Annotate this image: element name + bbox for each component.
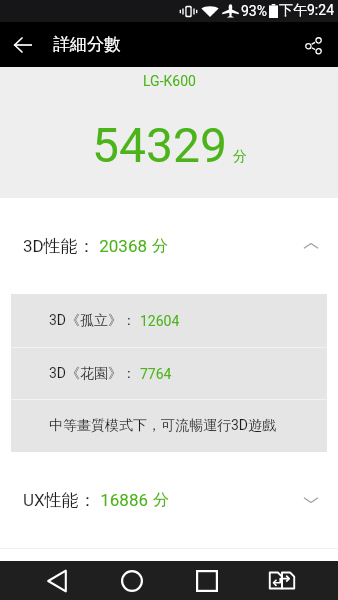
staticText: 93% — [241, 3, 267, 19]
staticText: 3D《孤立》： — [49, 312, 137, 330]
button[interactable]: Recent apps — [184, 561, 229, 600]
button[interactable]: Home — [109, 561, 154, 600]
staticText: 分 — [152, 236, 168, 256]
staticText: 3D《花園》： — [49, 365, 137, 383]
staticText: LG-K600 — [143, 73, 196, 89]
staticText: 3D性能： — [23, 236, 95, 257]
staticText: UX性能： — [23, 490, 96, 511]
button[interactable]: Back — [6, 28, 40, 62]
button[interactable]: 3D《孤立》： — [11, 294, 327, 347]
staticText: 12604 — [140, 313, 180, 329]
staticText: 分 — [233, 148, 247, 166]
button[interactable]: Share — [296, 28, 330, 62]
staticText: 分 — [153, 490, 169, 510]
staticText: 詳細分數 — [53, 34, 121, 55]
staticText: 7764 — [140, 366, 172, 382]
staticText: 下午9:24 — [279, 2, 334, 20]
button[interactable]: UX性能： — [0, 452, 338, 548]
staticText: 中等畫質模式下，可流暢運行3D遊戲 — [49, 417, 277, 435]
button[interactable]: 3D性能： — [0, 198, 338, 294]
staticText: 16886 — [96, 490, 153, 510]
staticText: 54329 — [92, 117, 227, 173]
button[interactable]: 3D《花園》： — [11, 348, 327, 399]
staticText: 20368 — [95, 236, 152, 256]
button[interactable]: Back — [34, 561, 79, 600]
button[interactable]: Switch apps — [259, 561, 304, 600]
